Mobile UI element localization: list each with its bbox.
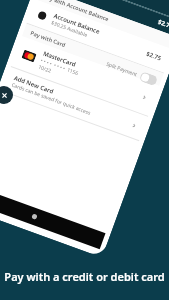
staticText: Pay with Card: [30, 29, 67, 48]
staticText: $30.25 Available: [50, 19, 89, 39]
staticText: TOTAL: [48, 0, 159, 25]
staticText: $2.75: [157, 18, 169, 31]
staticText: MasterCard: [42, 49, 78, 69]
button[interactable]: Add New Card: [2, 67, 148, 140]
button[interactable]: Select Payment Method: [51, 0, 169, 6]
staticText: Cards can be saved for quick access: [10, 81, 92, 117]
button[interactable]: Account Balance: [27, 0, 169, 73]
staticText: Split Payment: [105, 61, 139, 79]
staticText: 10/22: [37, 64, 53, 75]
button[interactable]: Close: [0, 86, 13, 104]
staticText: 3 Hour Pass - Full Fare: [54, 0, 169, 12]
button[interactable]: Split Payment: [105, 59, 158, 86]
button[interactable]: MasterCard: [11, 36, 159, 116]
staticText: Pay with a credit or debit card: [0, 269, 169, 284]
staticText: $2.75: [145, 50, 163, 63]
staticText: Add New Card: [13, 74, 55, 96]
staticText: • • • • • • • • 1156: [40, 57, 80, 77]
staticText: Account Balance: [52, 12, 101, 36]
staticText: Pay with Account Balance: [43, 0, 110, 22]
